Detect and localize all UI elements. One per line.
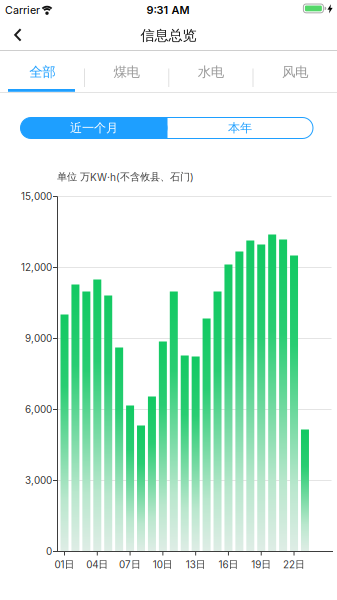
button[interactable]: 水电 [168, 52, 253, 92]
button[interactable]: 煤电 [84, 52, 168, 92]
staticText: 本年 [228, 120, 252, 136]
staticText: 13日 [186, 558, 206, 571]
staticText: 16日 [218, 558, 238, 571]
staticText: 全部 [29, 63, 55, 80]
button[interactable]: Back [0, 0, 337, 600]
staticText: 风电 [282, 63, 308, 80]
staticText: 单位 万KW·h(不含攸县、石门) [57, 171, 194, 183]
staticText: 9,000 [25, 332, 52, 344]
staticText: 3,000 [25, 474, 52, 486]
button[interactable]: 风电 [253, 52, 337, 92]
staticText: 12,000 [21, 261, 52, 273]
staticText: 近一个月 [70, 120, 118, 136]
button[interactable]: 全部 [0, 52, 84, 92]
staticText: 22日 [283, 558, 305, 571]
staticText: 15,000 [21, 190, 52, 202]
staticText: 9:31 AM [146, 3, 189, 17]
staticText: Carrier [5, 3, 40, 16]
button[interactable]: 近一个月 [0, 0, 337, 600]
staticText: 07日 [119, 558, 141, 571]
staticText: 煤电 [113, 63, 139, 80]
button[interactable]: 本年 [167, 117, 313, 138]
staticText: 10日 [153, 558, 173, 571]
staticText: 水电 [198, 63, 224, 80]
staticText: 19日 [251, 558, 271, 571]
staticText: 0 [46, 545, 52, 557]
staticText: 04日 [86, 558, 108, 571]
staticText: 信息总览 [140, 27, 196, 44]
staticText: 6,000 [25, 403, 52, 415]
staticText: 01日 [54, 558, 74, 571]
